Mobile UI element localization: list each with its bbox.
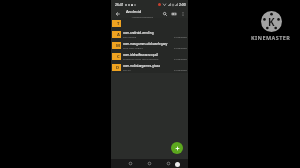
- button[interactable]: More options: [178, 9, 187, 18]
- staticText: Play Square: [123, 35, 137, 38]
- staticText: com.android.vending: [123, 31, 154, 35]
- staticText: KINEMASTER: [251, 34, 291, 41]
- staticText: 26:41: [115, 2, 124, 7]
- button[interactable]: M: [111, 40, 188, 51]
- staticText: M: [116, 43, 120, 49]
- button[interactable]: Recents: [163, 159, 173, 168]
- staticText: com.mavgames.stickwarlegacy: [123, 42, 168, 46]
- button[interactable]: Back: [113, 9, 123, 19]
- button[interactable]: A: [111, 29, 188, 40]
- staticText: T: [117, 21, 120, 27]
- staticText: ../sdcard/Android/d: [131, 15, 153, 18]
- staticText: A: [117, 32, 120, 38]
- button[interactable]: Search: [160, 9, 169, 18]
- button[interactable]: C: [111, 51, 188, 62]
- staticText: D: [116, 65, 120, 71]
- staticText: C: [117, 54, 120, 60]
- staticText: 31.08.2023: [174, 35, 187, 38]
- staticText: Scopa con Amici Terza modalita: [123, 57, 159, 60]
- button[interactable]: Add: [171, 142, 183, 154]
- staticText: 31.08.2023: [174, 57, 187, 60]
- staticText: K: [268, 15, 275, 29]
- staticText: Stick Wars Legacy: [123, 46, 143, 49]
- staticText: GTA SA: [123, 68, 131, 71]
- staticText: Android: [126, 9, 142, 15]
- staticText: com.rockstargames.gtasa: [123, 64, 160, 68]
- button[interactable]: D: [111, 62, 188, 73]
- button[interactable]: Home: [144, 159, 154, 168]
- staticText: 31.08.2023: [174, 68, 187, 71]
- staticText: 2:00: [179, 2, 186, 7]
- button[interactable]: T: [111, 18, 188, 29]
- staticText: com.idelsoftwear.scopa3: [123, 53, 159, 57]
- button[interactable]: Back: [125, 159, 135, 168]
- staticText: 31.08.2023: [174, 46, 187, 49]
- button[interactable]: View mode: [169, 9, 178, 18]
